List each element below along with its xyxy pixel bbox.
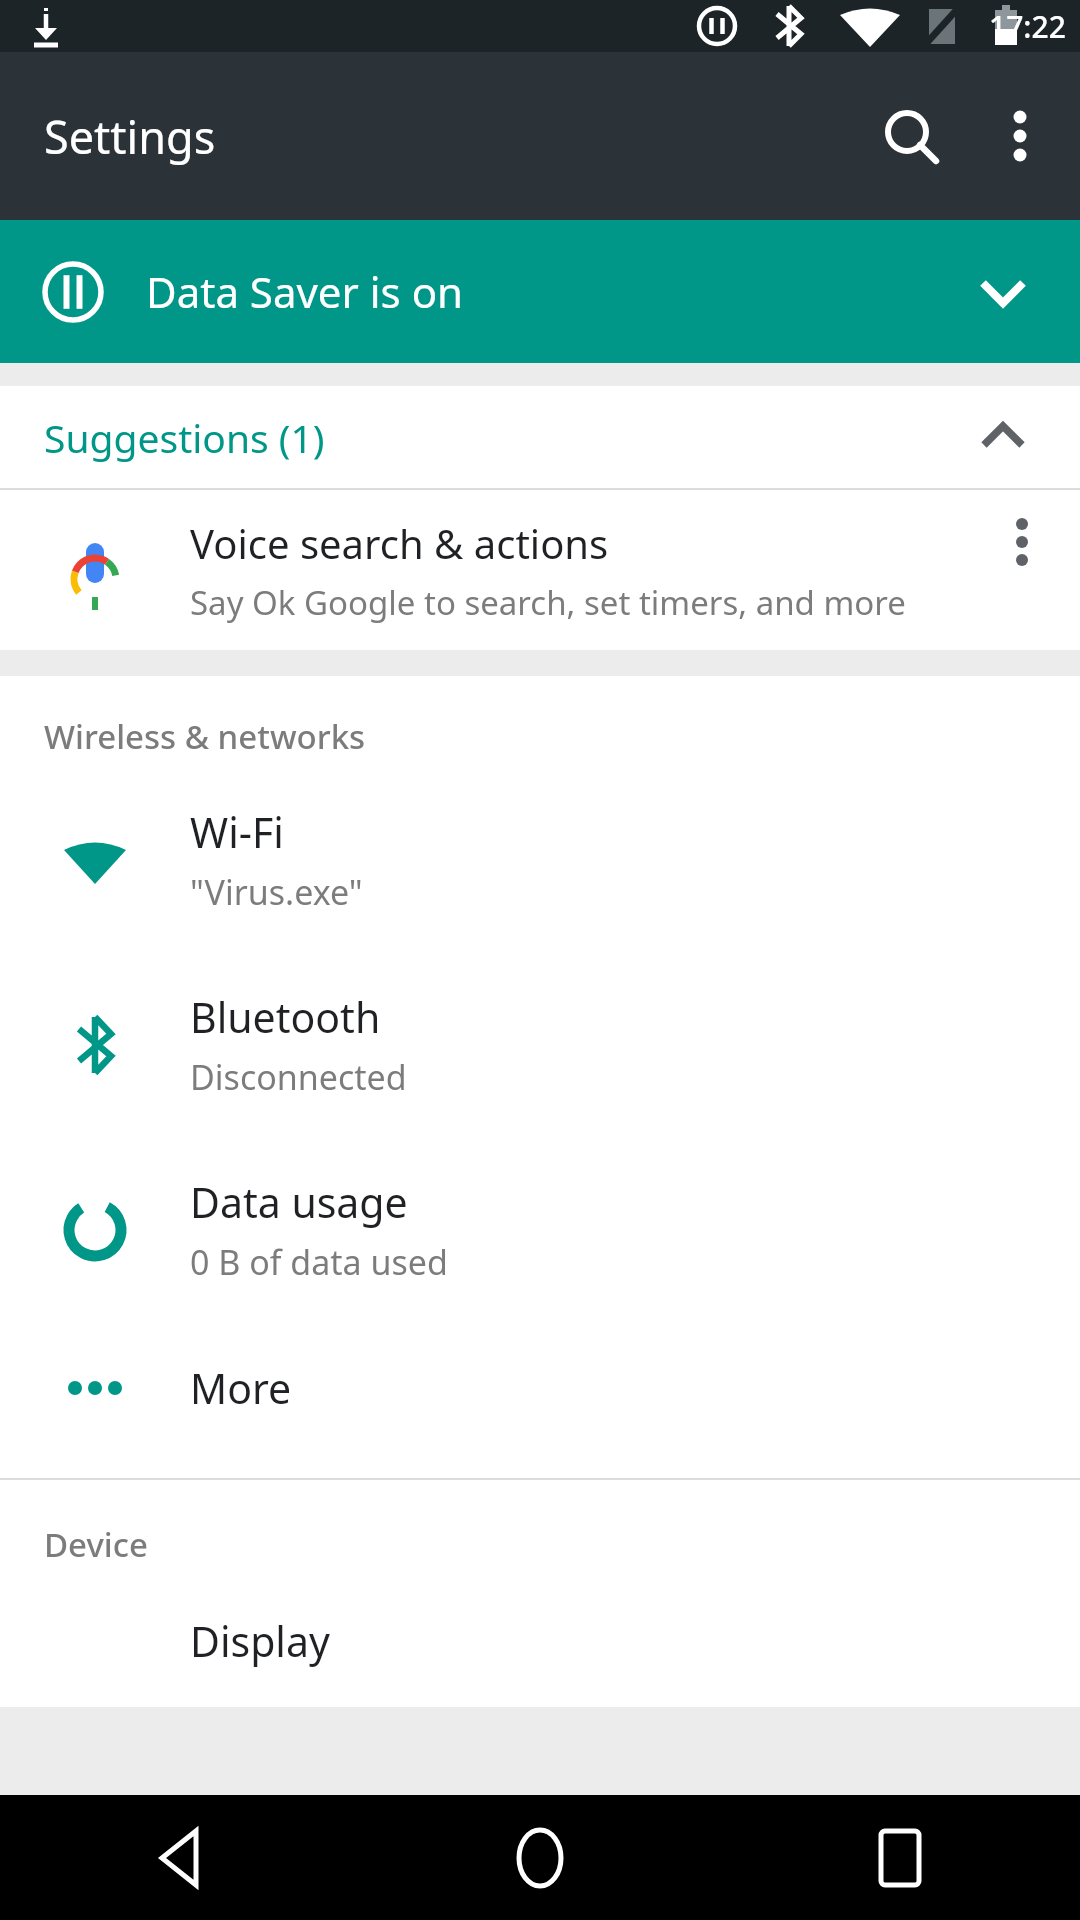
staticText: Say Ok Google to search, set timers, and…: [190, 580, 906, 625]
staticText: Voice search & actions: [190, 516, 609, 570]
staticText: 17:22: [989, 6, 1066, 47]
button[interactable]: Voice search & actions: [0, 490, 1080, 650]
other: Expand: [968, 257, 1038, 327]
button[interactable]: Suggestions (1): [0, 386, 1080, 488]
other: Collapse: [968, 402, 1038, 472]
staticText: Device: [44, 1522, 148, 1567]
button[interactable]: More options: [972, 88, 1068, 184]
staticText: Bluetooth: [190, 989, 381, 1045]
button[interactable]: Search: [862, 88, 958, 184]
staticText: Wireless & networks: [44, 714, 366, 759]
button[interactable]: Data usage: [0, 1137, 1080, 1322]
button[interactable]: Display: [0, 1575, 1080, 1707]
staticText: Wi-Fi: [190, 804, 284, 860]
button[interactable]: Wi-Fi: [0, 767, 1080, 952]
staticText: 0 B of data used: [190, 1239, 448, 1285]
staticText: Suggestions (1): [44, 411, 325, 464]
button[interactable]: Suggestion options: [982, 530, 1062, 610]
staticText: More: [190, 1360, 292, 1416]
button[interactable]: Bluetooth: [0, 952, 1080, 1137]
staticText: "Virus.exe": [190, 869, 363, 915]
button[interactable]: Home: [360, 1795, 720, 1920]
staticText: Settings: [44, 106, 216, 167]
staticText: Data Saver is on: [146, 263, 464, 320]
staticText: Data usage: [190, 1174, 408, 1230]
staticText: Disconnected: [190, 1054, 407, 1100]
button[interactable]: More: [0, 1322, 1080, 1454]
staticText: Display: [190, 1613, 330, 1669]
button[interactable]: Data Saver is on: [0, 220, 1080, 363]
button[interactable]: Recent apps: [720, 1795, 1080, 1920]
button[interactable]: Back: [0, 1795, 360, 1920]
